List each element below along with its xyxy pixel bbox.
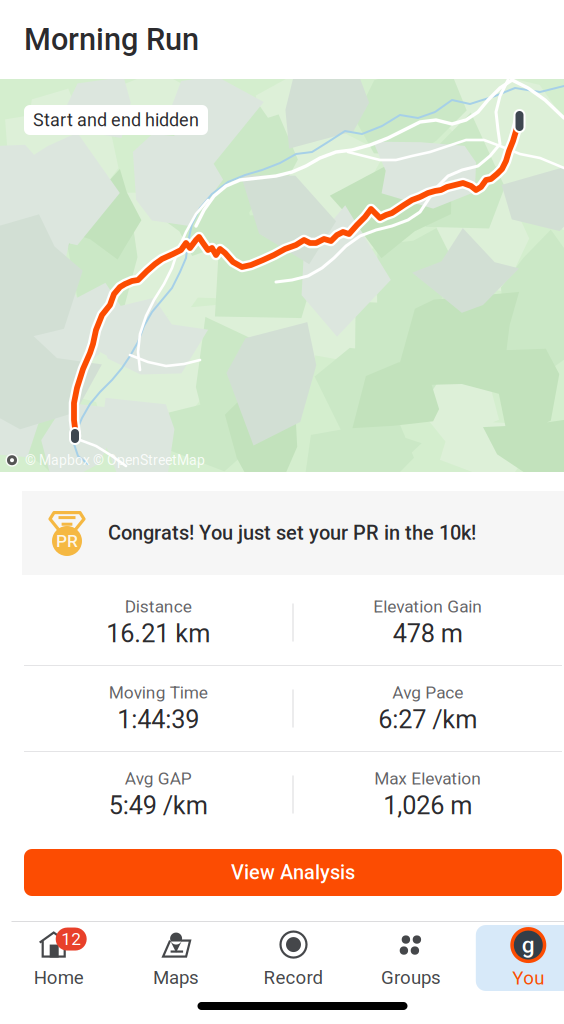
button[interactable]: View Analysis xyxy=(24,849,562,896)
staticText: Avg GAP xyxy=(125,768,192,789)
staticText: Distance xyxy=(125,596,192,617)
staticText: 1:44:39 xyxy=(117,705,199,734)
button[interactable]: Start and end hidden xyxy=(24,105,208,135)
staticText: Home xyxy=(34,967,84,988)
staticText: Moving Time xyxy=(109,682,208,703)
staticText: Avg Pace xyxy=(392,682,463,703)
staticText: 5:49 /km xyxy=(109,791,208,820)
staticText: Maps xyxy=(153,967,199,988)
staticText: You xyxy=(512,967,544,989)
staticText: Record xyxy=(263,967,323,988)
staticText: 478 m xyxy=(393,619,463,648)
staticText: Morning Run xyxy=(24,21,199,57)
staticText: Groups xyxy=(381,967,441,988)
button[interactable]: You xyxy=(470,922,564,994)
staticText: 16.21 km xyxy=(106,619,210,648)
staticText: PR xyxy=(56,531,78,551)
button[interactable]: Record xyxy=(235,925,352,991)
staticText: 1,026 m xyxy=(383,791,472,820)
staticText: View Analysis xyxy=(231,861,355,884)
staticText: g xyxy=(522,932,535,958)
staticText: 6:27 /km xyxy=(378,705,477,734)
button[interactable]: 12 xyxy=(0,925,117,991)
staticText: Max Elevation xyxy=(374,768,481,789)
staticText: © Mapbox © OpenStreetMap xyxy=(19,452,205,468)
button[interactable]: Groups xyxy=(352,925,470,991)
staticText: Congrats! You just set your PR in the 10… xyxy=(108,521,476,545)
button[interactable]: Maps xyxy=(117,925,235,991)
staticText: 12 xyxy=(61,929,81,949)
staticText: Start and end hidden xyxy=(33,109,199,131)
staticText: Elevation Gain xyxy=(373,596,482,617)
